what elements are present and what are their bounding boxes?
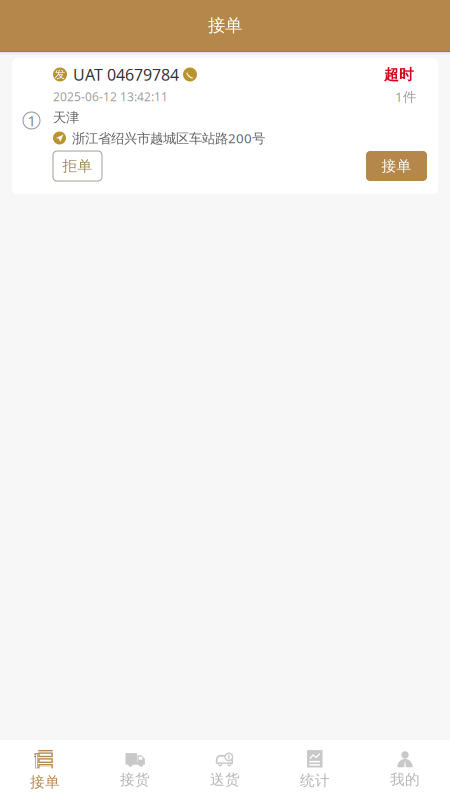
staticText: 接单 [30, 773, 60, 791]
staticText: 2025-06-12 13:42:11 [53, 88, 168, 104]
staticText: 拒单 [62, 157, 92, 175]
staticText: 接货 [120, 770, 150, 788]
button[interactable]: 接单 [0, 740, 90, 800]
staticText: 统计 [300, 771, 330, 789]
staticText: UAT 04679784 [73, 64, 179, 85]
button[interactable]: 接单 [366, 151, 427, 181]
staticText: 1件 [395, 88, 416, 105]
staticText: 发 [54, 68, 65, 81]
staticText: 超时 [384, 65, 414, 83]
button[interactable]: 接货 [90, 740, 180, 800]
staticText: 送货 [210, 770, 240, 788]
staticText: 接单 [208, 15, 242, 36]
staticText: 我的 [390, 770, 420, 788]
staticText: 1 [27, 111, 35, 130]
button[interactable]: 送货 [180, 740, 270, 800]
button[interactable]: 我的 [360, 740, 450, 800]
staticText: 天津 [53, 109, 79, 126]
button[interactable]: 拒单 [53, 151, 102, 181]
button[interactable]: 统计 [270, 740, 360, 800]
staticText: 浙江省绍兴市越城区车站路200号 [72, 129, 265, 147]
staticText: 接单 [381, 157, 411, 175]
